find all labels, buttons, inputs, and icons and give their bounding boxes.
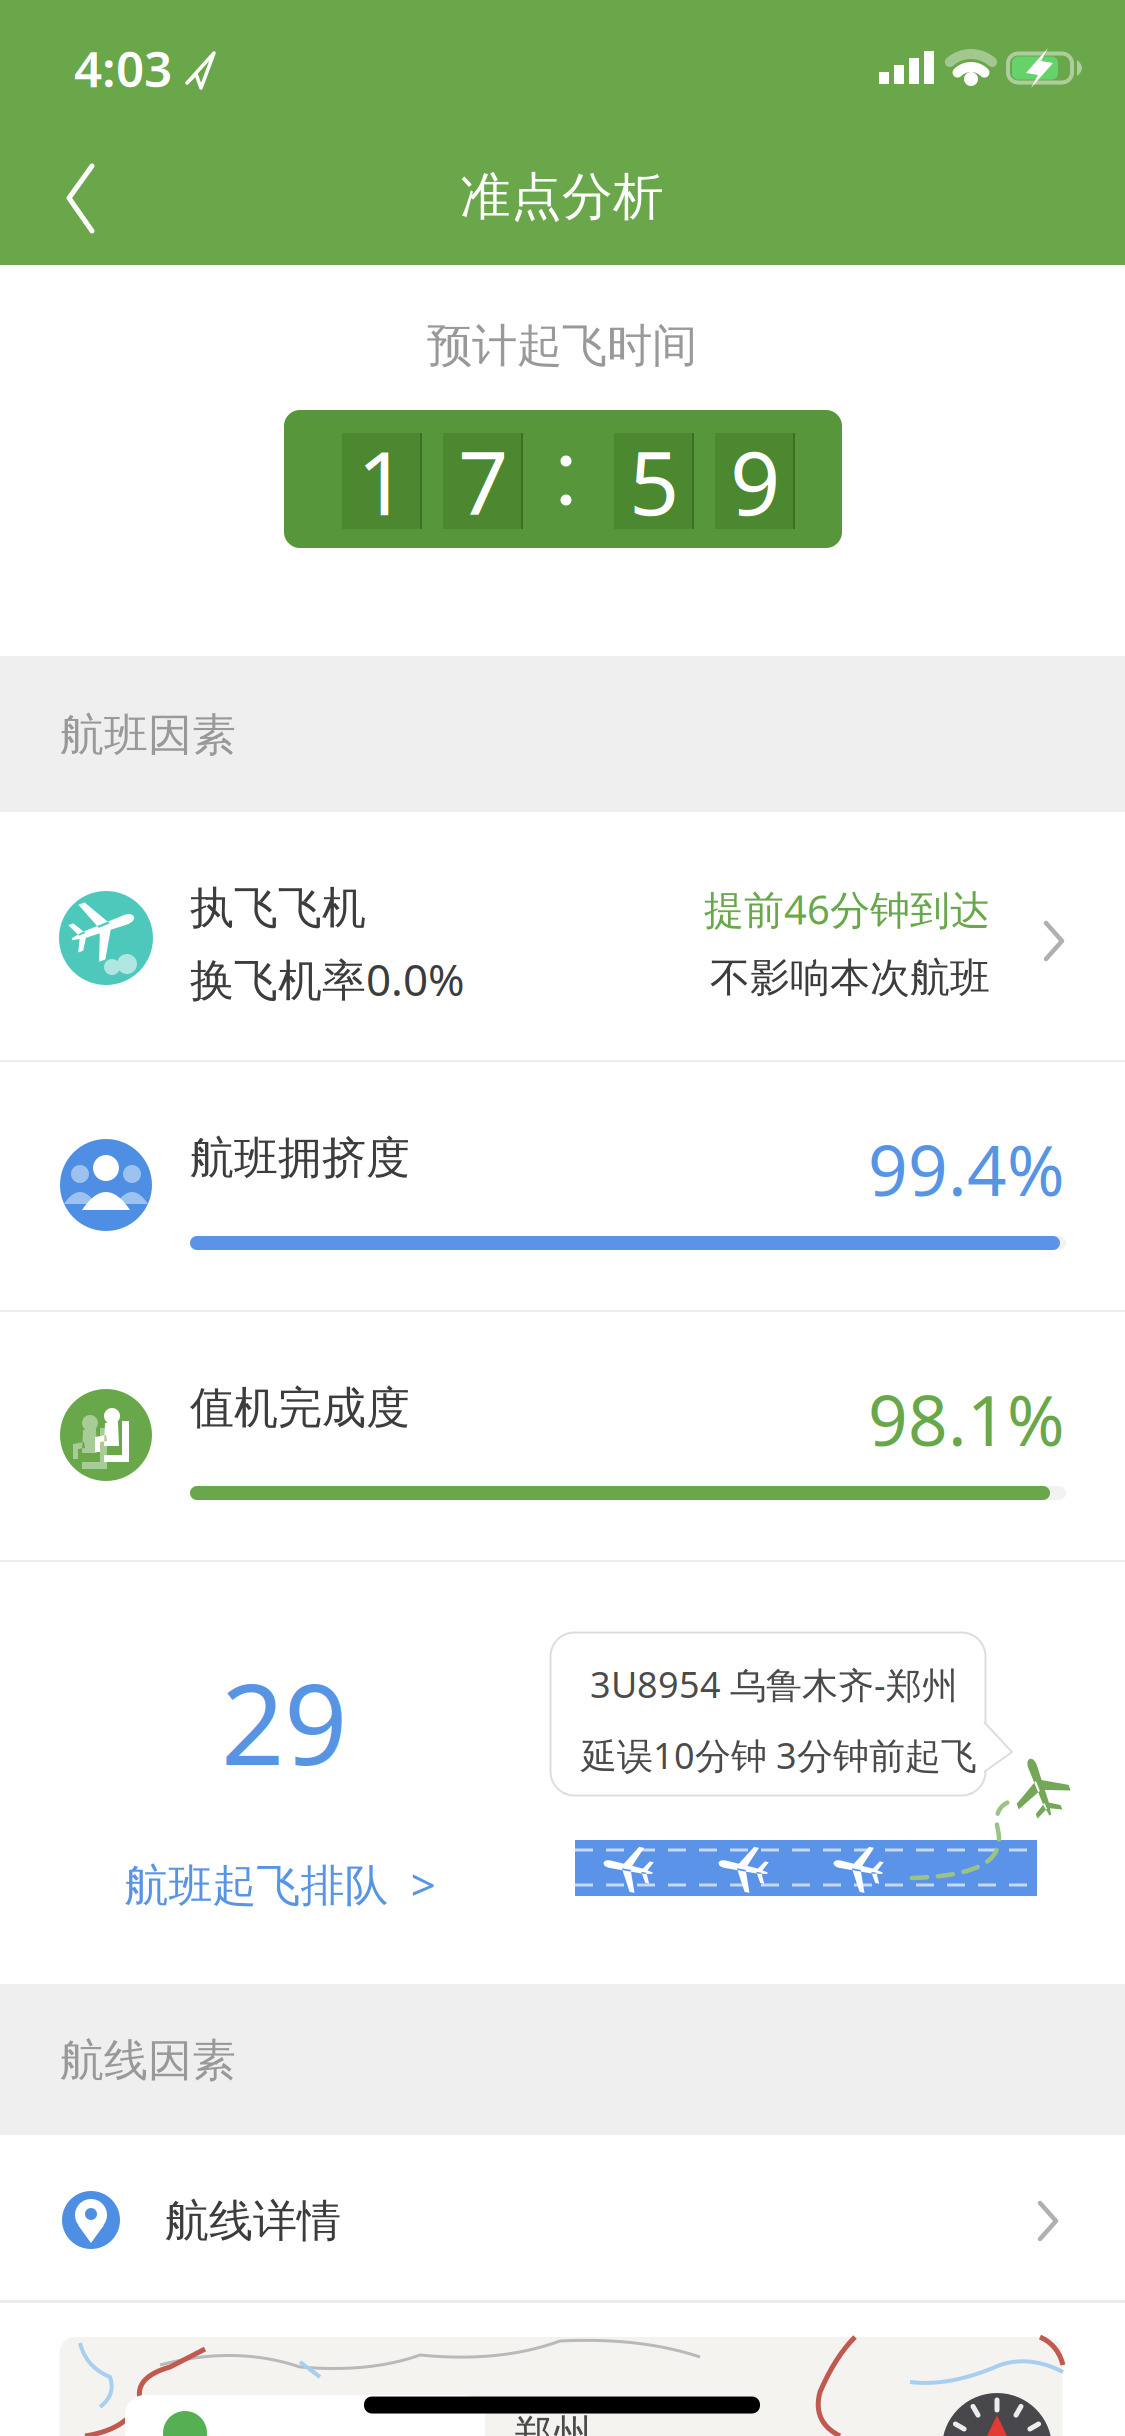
button[interactable]: 执飞飞机 bbox=[0, 812, 1125, 1060]
button[interactable]: 航班起飞排队 > bbox=[124, 1855, 435, 1913]
staticText: 98.1% bbox=[868, 1373, 1065, 1465]
staticText: 4:03 bbox=[74, 35, 172, 101]
staticText: 值机完成度 bbox=[190, 1381, 410, 1435]
staticText: 3U8954 乌鲁木齐-郑州 bbox=[590, 1660, 958, 1708]
staticText: 7 bbox=[458, 423, 508, 539]
staticText: 航班因素 bbox=[60, 708, 236, 762]
staticText: 29 bbox=[221, 1648, 347, 1795]
staticText: 1 bbox=[357, 423, 407, 539]
staticText: 提前46分钟到达 bbox=[704, 882, 990, 935]
staticText: 航班拥挤度 bbox=[190, 1131, 410, 1185]
staticText: 航线详情 bbox=[165, 2194, 341, 2248]
staticText: 郑州 bbox=[514, 2410, 592, 2436]
staticText: 换飞机率0.0% bbox=[190, 950, 465, 1008]
staticText: 延误10分钟 3分钟前起飞 bbox=[581, 1731, 977, 1779]
staticText: 99.4% bbox=[868, 1123, 1065, 1215]
staticText: 航班起飞排队 > bbox=[124, 1855, 435, 1913]
staticText: 执飞飞机 bbox=[190, 881, 366, 935]
staticText: 5 bbox=[629, 423, 679, 539]
staticText: 不影响本次航班 bbox=[710, 953, 990, 1002]
staticText: 准点分析 bbox=[460, 166, 664, 228]
staticText: 预计起飞时间 bbox=[427, 318, 697, 374]
button[interactable]: Back bbox=[0, 0, 140, 265]
button[interactable]: 航线详情 bbox=[0, 2135, 1125, 2300]
staticText: 航线因素 bbox=[60, 2033, 236, 2087]
staticText: 9 bbox=[730, 423, 780, 539]
